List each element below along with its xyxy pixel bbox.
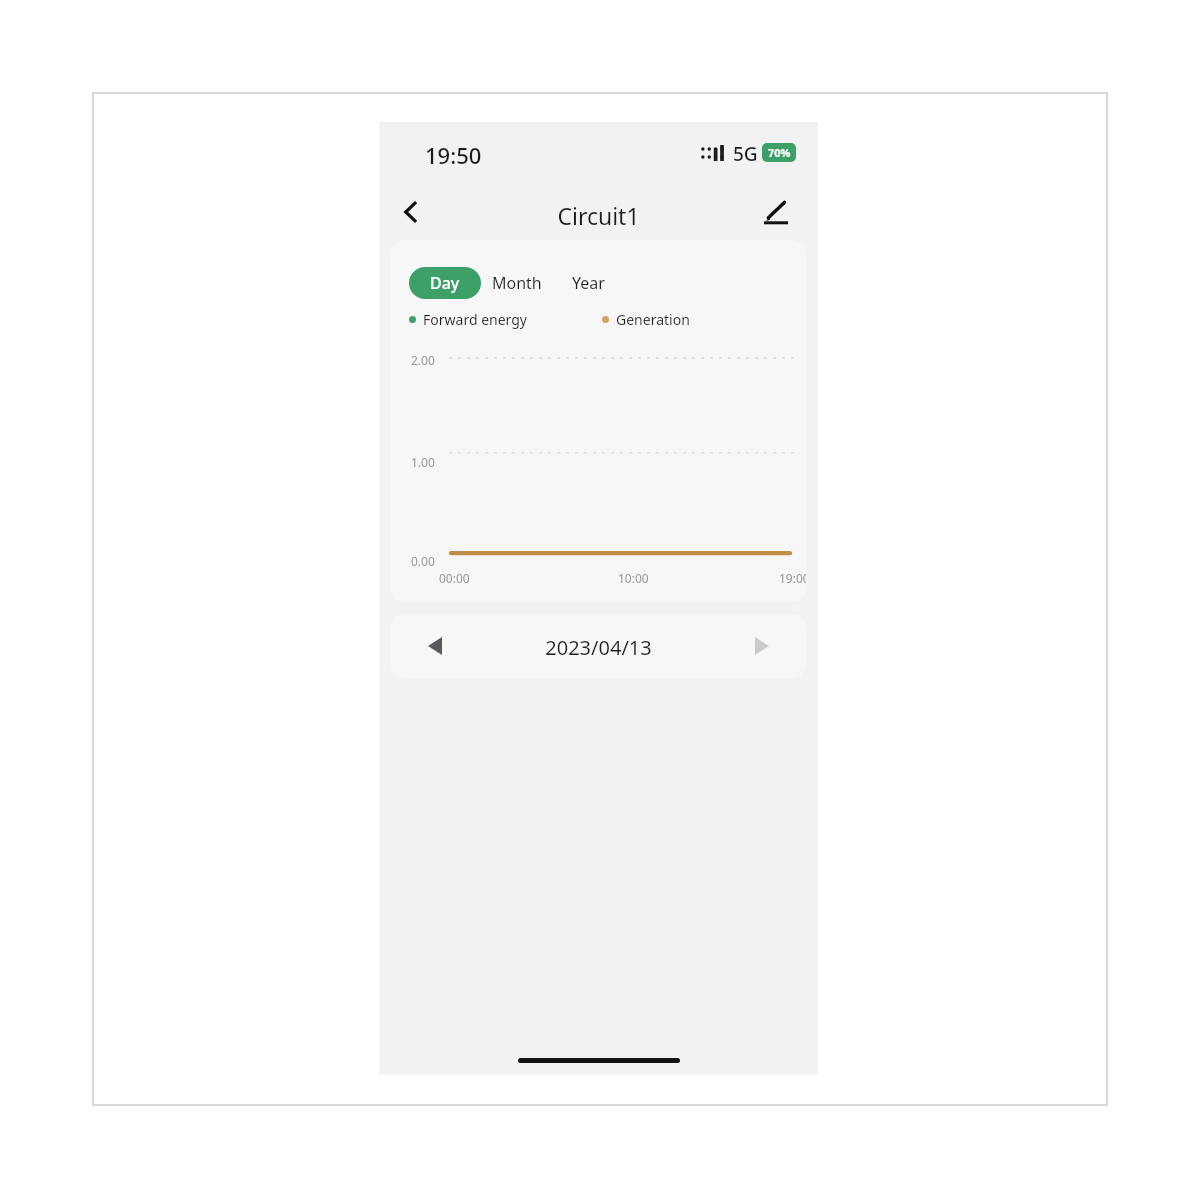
staticText: 5G <box>733 141 758 167</box>
button[interactable]: Year <box>553 267 623 299</box>
staticText: 2023/04/13 <box>391 634 806 661</box>
staticText: Day <box>430 272 460 294</box>
button[interactable]: Edit <box>754 190 798 234</box>
staticText: 00:00 <box>439 570 470 586</box>
staticText: 1.00 <box>411 454 435 470</box>
staticText: 2.00 <box>411 352 435 368</box>
staticText: Forward energy <box>423 310 527 329</box>
staticText: 10:00 <box>618 570 649 586</box>
staticText: 70% <box>768 145 791 160</box>
staticText: Month <box>492 272 542 294</box>
staticText: Year <box>572 272 605 294</box>
staticText: 0.00 <box>411 553 435 569</box>
staticText: Generation <box>616 310 690 329</box>
button[interactable]: Month <box>481 267 553 299</box>
button[interactable]: Next day <box>740 624 784 668</box>
staticText: Circuit1 <box>379 200 818 231</box>
button[interactable]: Previous day <box>413 624 457 668</box>
button[interactable]: Day <box>409 267 481 299</box>
button[interactable]: Back <box>389 190 433 234</box>
staticText: 19:00 <box>779 570 806 586</box>
staticText: 19:50 <box>425 140 482 170</box>
